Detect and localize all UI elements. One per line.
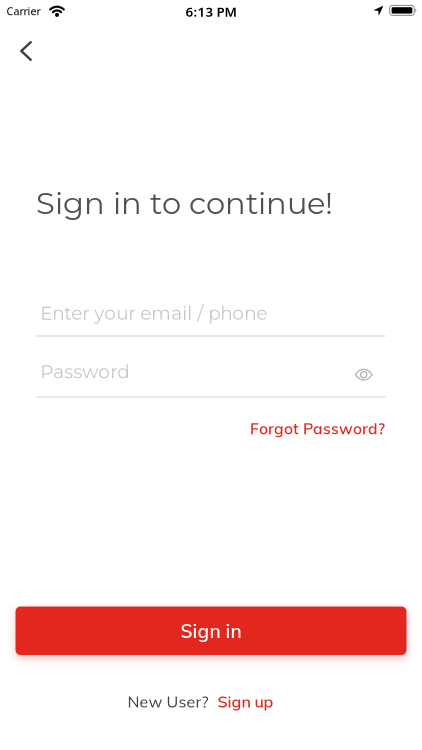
staticText: Sign in to continue! xyxy=(36,184,333,222)
button[interactable]: Forgot Password? xyxy=(250,419,385,438)
staticText: New User? xyxy=(127,691,208,712)
staticText: Password xyxy=(40,360,129,383)
button[interactable]: Sign in xyxy=(15,606,406,655)
staticText: 6:13 PM xyxy=(185,3,236,20)
button[interactable] xyxy=(4,29,48,73)
button[interactable] xyxy=(355,368,374,382)
staticText: Enter your email / phone xyxy=(40,302,267,324)
staticText: Carrier xyxy=(6,4,40,18)
staticText: Sign in xyxy=(180,619,241,643)
staticText: Forgot Password? xyxy=(250,419,385,438)
button[interactable]: Enter your email / phone xyxy=(40,302,267,324)
button[interactable]: Sign up xyxy=(217,691,273,712)
button[interactable]: Password xyxy=(40,360,129,383)
staticText: Sign up xyxy=(217,691,273,712)
